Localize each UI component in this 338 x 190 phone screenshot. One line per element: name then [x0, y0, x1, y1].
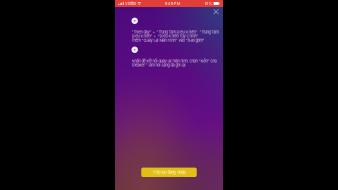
staticText: sneaker” làm nổi sáng đã ghi lại: [131, 63, 185, 67]
staticText: 9:49 PM: [165, 1, 181, 6]
staticText: Viettel: [125, 1, 136, 6]
staticText: Điều Khiển” + “Điều Khiển Tùy Chỉnh”: [131, 34, 198, 38]
staticText: Nhấn để kết nối quay lại màn hình, chọn …: [131, 59, 216, 63]
button[interactable]: Close: [211, 7, 221, 16]
staticText: Thêm “Quay Lại Màn Hình” vào “Bao gồm”: [131, 38, 204, 43]
staticText: Tiếp tục đăng nhập: [152, 170, 185, 175]
button[interactable]: Tiếp tục đăng nhập: [141, 168, 197, 177]
staticText: “Thiền đây” + “Trung Tâm Điều Khiển” “Tr…: [131, 30, 218, 34]
staticText: 61%: [204, 1, 212, 6]
